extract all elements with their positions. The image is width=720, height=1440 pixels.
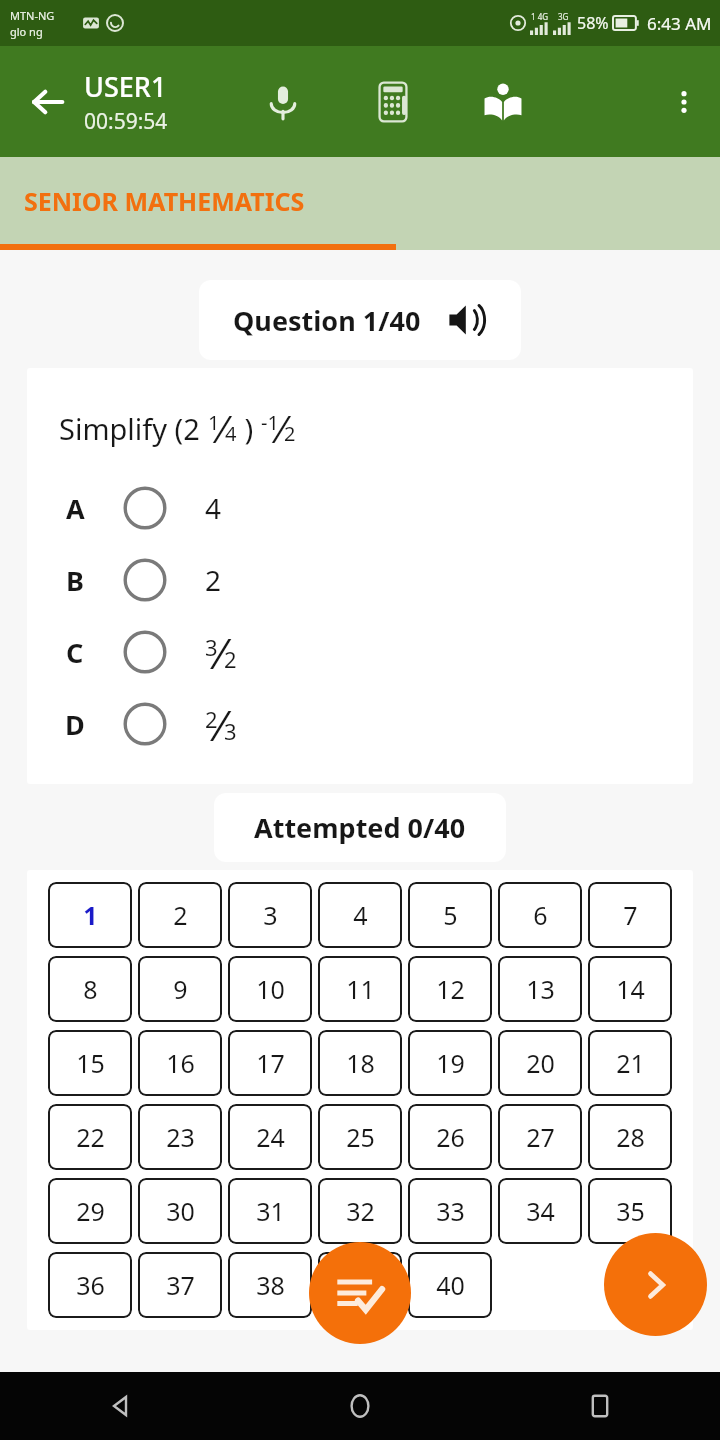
staticText: 36 — [76, 1268, 105, 1302]
staticText: 2 — [205, 704, 218, 734]
button[interactable]: 40 — [408, 1252, 492, 1318]
button[interactable]: Attempted 0/40 — [254, 809, 466, 846]
button[interactable]: 16 — [138, 1030, 222, 1096]
staticText: ⁄ — [218, 696, 224, 753]
staticText: 34 — [526, 1194, 555, 1228]
staticText: 31 — [256, 1194, 285, 1228]
button[interactable]: 26 — [408, 1104, 492, 1170]
button[interactable]: 25 — [318, 1104, 402, 1170]
button[interactable]: 32 — [318, 1178, 402, 1244]
button[interactable]: 38 — [228, 1252, 312, 1318]
staticText: 10 — [256, 972, 285, 1006]
button[interactable]: 7 — [588, 882, 672, 948]
button[interactable]: Submit — [309, 1242, 411, 1344]
button[interactable]: 22 — [48, 1104, 132, 1170]
button[interactable]: More options — [658, 76, 710, 128]
button[interactable]: Library — [474, 73, 532, 131]
button[interactable]: SENIOR MATHEMATICS — [0, 157, 396, 250]
staticText: 19 — [436, 1046, 465, 1080]
staticText: 1 4G — [531, 11, 549, 22]
staticText: A — [66, 490, 85, 527]
button[interactable]: C — [27, 616, 693, 688]
button[interactable]: 13 — [498, 956, 582, 1022]
staticText: 16 — [166, 1046, 195, 1080]
button[interactable]: Calculator — [364, 73, 422, 131]
button[interactable]: 9 — [138, 956, 222, 1022]
staticText: 25 — [346, 1120, 375, 1154]
staticText: 2 — [224, 644, 237, 674]
button[interactable]: 17 — [228, 1030, 312, 1096]
staticText: 22 — [76, 1120, 105, 1154]
button[interactable]: 20 — [498, 1030, 582, 1096]
button[interactable]: 11 — [318, 956, 402, 1022]
button[interactable]: 23 — [138, 1104, 222, 1170]
button[interactable]: B — [27, 544, 693, 616]
staticText: 39 — [346, 1268, 375, 1302]
button[interactable]: 36 — [48, 1252, 132, 1318]
staticText: glo ng — [10, 24, 43, 39]
button[interactable]: 6 — [498, 882, 582, 948]
staticText: B — [66, 562, 84, 599]
staticText: 24 — [256, 1120, 285, 1154]
staticText: 4 — [353, 898, 368, 932]
button[interactable]: 24 — [228, 1104, 312, 1170]
staticText: 2 — [173, 898, 188, 932]
staticText: 3 — [224, 716, 237, 746]
button[interactable]: 1 — [48, 882, 132, 948]
staticText: 12 — [436, 972, 465, 1006]
staticText: 40 — [436, 1268, 465, 1302]
staticText: 8 — [83, 972, 98, 1006]
staticText: 5 — [443, 898, 458, 932]
staticText: 3 — [205, 632, 218, 662]
staticText: -1 — [261, 409, 279, 436]
staticText: ⁄ — [218, 624, 224, 681]
staticText: 1 — [208, 409, 220, 436]
button[interactable]: 5 — [408, 882, 492, 948]
staticText: ⁄ — [220, 402, 225, 454]
button[interactable]: 19 — [408, 1030, 492, 1096]
staticText: 2 — [205, 561, 222, 599]
button[interactable]: 15 — [48, 1030, 132, 1096]
button[interactable]: D — [27, 688, 693, 760]
button[interactable]: Voice — [254, 73, 312, 131]
button[interactable]: 28 — [588, 1104, 672, 1170]
button[interactable]: 29 — [48, 1178, 132, 1244]
button[interactable]: 3 — [228, 882, 312, 948]
staticText: ⁄ — [279, 402, 284, 454]
staticText: 6 — [533, 898, 548, 932]
button[interactable]: 31 — [228, 1178, 312, 1244]
button[interactable]: 10 — [228, 956, 312, 1022]
button[interactable]: 14 — [588, 956, 672, 1022]
staticText: 27 — [526, 1120, 555, 1154]
staticText: 9 — [173, 972, 188, 1006]
button[interactable]: Recents — [480, 1372, 720, 1440]
button[interactable]: 18 — [318, 1030, 402, 1096]
button[interactable]: Next question — [604, 1233, 707, 1336]
button[interactable]: 4 — [318, 882, 402, 948]
button[interactable]: Home — [240, 1372, 480, 1440]
staticText: 15 — [76, 1046, 105, 1080]
staticText: 33 — [436, 1194, 465, 1228]
button[interactable]: Question 1/40 — [233, 300, 487, 340]
staticText: USER1 — [84, 68, 167, 105]
button[interactable]: 35 — [588, 1178, 672, 1244]
staticText: 4 — [205, 489, 222, 527]
button[interactable]: 27 — [498, 1104, 582, 1170]
button[interactable]: 39 — [318, 1252, 402, 1318]
button[interactable]: 34 — [498, 1178, 582, 1244]
button[interactable]: Back — [0, 1372, 240, 1440]
staticText: 30 — [166, 1194, 195, 1228]
button[interactable]: 33 — [408, 1178, 492, 1244]
button[interactable]: 30 — [138, 1178, 222, 1244]
button[interactable]: Back — [18, 73, 76, 131]
staticText: 35 — [616, 1194, 645, 1228]
button[interactable]: 8 — [48, 956, 132, 1022]
staticText: Simplify (2 — [59, 409, 208, 448]
button[interactable]: 21 — [588, 1030, 672, 1096]
button[interactable]: 12 — [408, 956, 492, 1022]
staticText: MTN-NG — [10, 8, 55, 23]
button[interactable]: 2 — [138, 882, 222, 948]
button[interactable]: A — [27, 472, 693, 544]
staticText: 11 — [346, 972, 375, 1006]
button[interactable]: 37 — [138, 1252, 222, 1318]
